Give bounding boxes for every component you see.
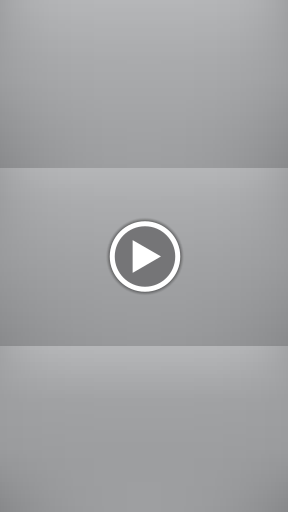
button[interactable]: Play video (106, 217, 184, 295)
